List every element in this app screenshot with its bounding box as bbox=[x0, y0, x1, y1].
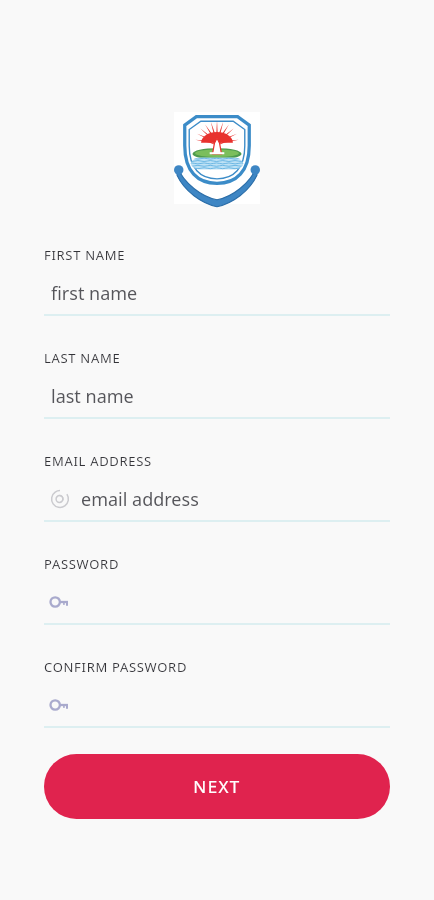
staticText: CONFIRM PASSWORD bbox=[44, 658, 188, 676]
staticText: FIRST NAME bbox=[44, 246, 126, 264]
other: Password bbox=[50, 592, 70, 612]
button[interactable]: PASSWORD bbox=[44, 555, 390, 625]
button[interactable]: FIRST NAME bbox=[44, 246, 390, 316]
button[interactable]: LAST NAME bbox=[44, 349, 390, 419]
button[interactable]: EMAIL ADDRESS bbox=[44, 452, 390, 522]
staticText: PASSWORD bbox=[44, 555, 120, 573]
staticText: last name bbox=[51, 384, 134, 409]
staticText: NEXT bbox=[193, 775, 241, 798]
staticText: LAST NAME bbox=[44, 349, 121, 367]
other: Password bbox=[50, 695, 70, 715]
staticText: first name bbox=[51, 281, 138, 306]
staticText: EMAIL ADDRESS bbox=[44, 452, 152, 470]
button[interactable]: NEXT bbox=[44, 754, 390, 819]
staticText: email address bbox=[81, 487, 199, 512]
other: Email bbox=[50, 489, 70, 509]
button[interactable]: CONFIRM PASSWORD bbox=[44, 658, 390, 728]
